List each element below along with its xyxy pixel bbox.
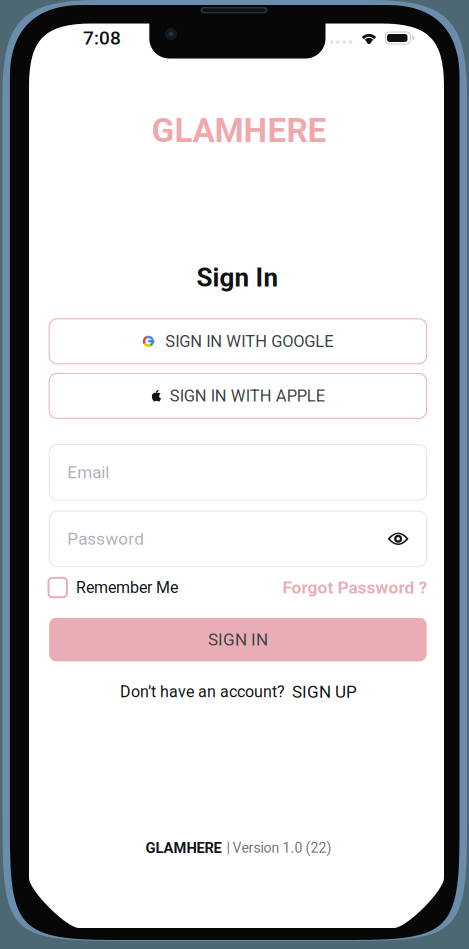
staticText: Remember Me bbox=[76, 578, 178, 597]
staticText: 7:08 bbox=[83, 27, 121, 49]
button[interactable]: SIGN IN bbox=[49, 618, 427, 661]
staticText: | Version 1.0 (22) bbox=[226, 840, 331, 856]
button[interactable]: Remember Me bbox=[48, 578, 178, 597]
staticText: SIGN UP bbox=[292, 682, 357, 702]
staticText: SIGN IN WITH GOOGLE bbox=[165, 332, 333, 351]
staticText: Forgot Password ? bbox=[282, 577, 427, 598]
staticText: Password bbox=[67, 529, 144, 549]
button[interactable]: Forgot Password ? bbox=[282, 577, 427, 598]
staticText: SIGN IN WITH APPLE bbox=[170, 386, 325, 406]
staticText: Don’t have an account? bbox=[120, 682, 285, 701]
staticText: GLAMHERE bbox=[151, 111, 326, 150]
button[interactable]: Show password bbox=[388, 531, 409, 546]
staticText: Email bbox=[67, 462, 109, 482]
button[interactable]: SIGN IN WITH APPLE bbox=[49, 373, 427, 418]
staticText: Sign In bbox=[196, 262, 278, 293]
button[interactable]: SIGN IN WITH GOOGLE bbox=[49, 319, 427, 364]
button[interactable]: SIGN UP bbox=[292, 682, 357, 702]
staticText: SIGN IN bbox=[208, 630, 268, 650]
staticText: GLAMHERE bbox=[145, 839, 221, 857]
